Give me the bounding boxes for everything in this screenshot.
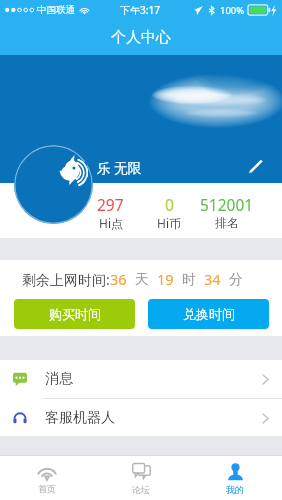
staticText: 消息 bbox=[45, 370, 73, 388]
button[interactable]: 消息 bbox=[0, 360, 282, 398]
button[interactable]: 论坛 bbox=[94, 456, 188, 500]
staticText: 购买时间 bbox=[49, 306, 101, 322]
button[interactable]: 首页 bbox=[0, 456, 94, 500]
staticText: 512001 bbox=[200, 194, 254, 215]
button[interactable]: 客服机器人 bbox=[0, 399, 282, 437]
button[interactable]: Profile photo bbox=[14, 145, 93, 224]
staticText: 客服机器人 bbox=[45, 409, 115, 427]
staticText: 36 bbox=[110, 269, 127, 289]
staticText: 19 bbox=[157, 269, 174, 289]
staticText: 个人中心 bbox=[111, 28, 171, 47]
staticText: 0 bbox=[165, 194, 174, 215]
staticText: 论坛 bbox=[132, 484, 150, 495]
button[interactable]: 购买时间 bbox=[14, 299, 135, 329]
staticText: 分 bbox=[229, 271, 243, 289]
staticText: 天 bbox=[135, 271, 149, 289]
button[interactable]: 0 bbox=[140, 194, 198, 231]
staticText: 中国联通 bbox=[37, 4, 75, 16]
staticText: 100% bbox=[220, 4, 245, 17]
button[interactable]: 297 bbox=[81, 194, 140, 231]
button[interactable]: 我的 bbox=[188, 456, 282, 500]
staticText: 剩余上网时间: bbox=[22, 270, 110, 289]
staticText: 乐 无限 bbox=[97, 159, 142, 177]
staticText: 34 bbox=[204, 269, 221, 289]
staticText: 时 bbox=[182, 271, 196, 289]
staticText: 首页 bbox=[38, 483, 56, 494]
staticText: Hi点 bbox=[99, 215, 123, 231]
button[interactable]: Edit profile bbox=[244, 154, 268, 178]
staticText: 我的 bbox=[226, 484, 244, 495]
staticText: 兑换时间 bbox=[183, 306, 235, 322]
staticText: 下午3:17 bbox=[120, 3, 160, 17]
button[interactable]: 兑换时间 bbox=[148, 299, 269, 329]
staticText: Hi币 bbox=[157, 215, 181, 231]
staticText: 297 bbox=[97, 194, 124, 215]
staticText: 排名 bbox=[215, 215, 239, 230]
button[interactable]: 512001 bbox=[198, 194, 256, 230]
